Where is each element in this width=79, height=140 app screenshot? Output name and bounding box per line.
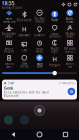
button[interactable]: QR code bbox=[62, 39, 77, 54]
button[interactable]: Expand bbox=[73, 2, 77, 6]
staticText: QR code bbox=[64, 47, 76, 50]
button[interactable]: Extra bbox=[32, 54, 47, 69]
staticText: Night bbox=[51, 47, 59, 50]
staticText: rotate bbox=[66, 20, 74, 23]
button[interactable]: Device bbox=[47, 24, 62, 39]
button[interactable]: Cast bbox=[17, 39, 32, 54]
button[interactable]: Aeroplane bbox=[1, 24, 17, 39]
staticText: Keep hands-free with the latest Bluetoot… bbox=[4, 91, 49, 98]
button[interactable]: Screen bbox=[1, 39, 17, 54]
staticText: Sunday, 8 June bbox=[2, 6, 23, 9]
staticText: mode bbox=[5, 35, 13, 38]
staticText: cast bbox=[68, 65, 72, 68]
staticText: dim bbox=[37, 65, 42, 68]
staticText: Dark bbox=[22, 62, 27, 65]
staticText: v bbox=[74, 81, 75, 85]
staticText: theme bbox=[20, 65, 29, 68]
staticText: mode bbox=[35, 50, 43, 53]
staticText: Screen bbox=[65, 62, 74, 65]
staticText: Do Not bbox=[34, 17, 44, 20]
button[interactable]: Location bbox=[32, 24, 47, 39]
staticText: E-mail bbox=[8, 81, 15, 85]
staticText: Auto- bbox=[66, 17, 74, 20]
button[interactable]: Home bbox=[26, 129, 52, 140]
button[interactable]: Focus bbox=[32, 39, 47, 54]
button[interactable]: Battery bbox=[1, 54, 17, 69]
staticText: scanner bbox=[65, 50, 75, 53]
button[interactable]: Brightness bbox=[61, 2, 65, 6]
staticText: Geek bbox=[4, 85, 13, 91]
staticText: Light bbox=[51, 50, 58, 53]
staticText: Screen bbox=[5, 47, 14, 50]
button[interactable]: Data Saver bbox=[17, 24, 32, 39]
staticText: Extra bbox=[37, 62, 42, 65]
button[interactable]: Recent apps bbox=[52, 129, 78, 140]
button[interactable]: Settings bbox=[67, 2, 71, 6]
staticText: Device bbox=[51, 32, 59, 35]
button[interactable]: Torch bbox=[47, 9, 62, 24]
staticText: Bluetooth bbox=[17, 18, 32, 22]
staticText: Aeroplane bbox=[2, 32, 17, 35]
button[interactable]: Do Not bbox=[32, 9, 47, 24]
button[interactable]: Bluetooth bbox=[17, 9, 32, 24]
button[interactable]: Wi-Fi bbox=[1, 9, 17, 24]
staticText: Saver bbox=[6, 65, 12, 68]
staticText: Focus bbox=[36, 47, 43, 50]
staticText: Disturb bbox=[34, 20, 44, 23]
staticText: Location bbox=[34, 33, 45, 37]
staticText: Share bbox=[66, 35, 73, 38]
staticText: Cast bbox=[22, 48, 27, 52]
button[interactable]: Dark bbox=[17, 54, 32, 69]
staticText: Data Saver bbox=[18, 33, 30, 37]
staticText: 5 minutes bbox=[59, 81, 73, 85]
button[interactable]: Brightness bbox=[2, 71, 77, 76]
staticText: G bbox=[70, 89, 73, 94]
button[interactable]: Night bbox=[47, 39, 62, 54]
staticText: Home-5G bbox=[3, 20, 16, 23]
staticText: controls bbox=[49, 35, 60, 38]
button[interactable]: Nearby bbox=[62, 24, 77, 39]
staticText: Record bbox=[4, 50, 14, 53]
staticText: Wi-Fi bbox=[6, 17, 12, 20]
staticText: 18:35 bbox=[2, 0, 15, 7]
button[interactable]: Hotspot bbox=[47, 54, 62, 69]
button[interactable]: Auto- bbox=[62, 9, 77, 24]
staticText: Battery bbox=[5, 62, 14, 65]
staticText: Hotspot bbox=[49, 63, 60, 67]
staticText: Nearby bbox=[65, 32, 74, 35]
staticText: Torch bbox=[51, 18, 58, 22]
button[interactable]: E-mail bbox=[2, 80, 77, 99]
button[interactable]: Screen bbox=[62, 54, 77, 69]
button[interactable]: Back bbox=[0, 129, 26, 140]
